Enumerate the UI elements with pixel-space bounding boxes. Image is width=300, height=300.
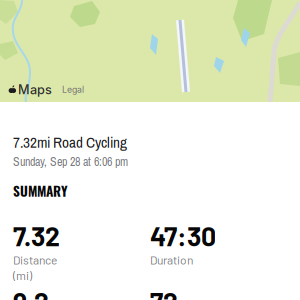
staticText: 9.2: [13, 285, 49, 300]
staticText: 47:30: [150, 220, 216, 252]
staticText: Legal: [62, 84, 84, 95]
staticText: SUMMARY: [13, 181, 68, 201]
staticText: 72: [150, 285, 178, 300]
staticText: 7.32: [13, 220, 60, 252]
staticText: 7.32mi Road Cycling: [13, 132, 127, 153]
staticText: Sunday, Sep 28 at 6:06 pm: [13, 154, 128, 170]
staticText: Distance: [13, 253, 57, 267]
staticText: Duration: [150, 253, 193, 267]
staticText: Maps: [18, 82, 52, 97]
staticText: (mi): [13, 268, 32, 282]
